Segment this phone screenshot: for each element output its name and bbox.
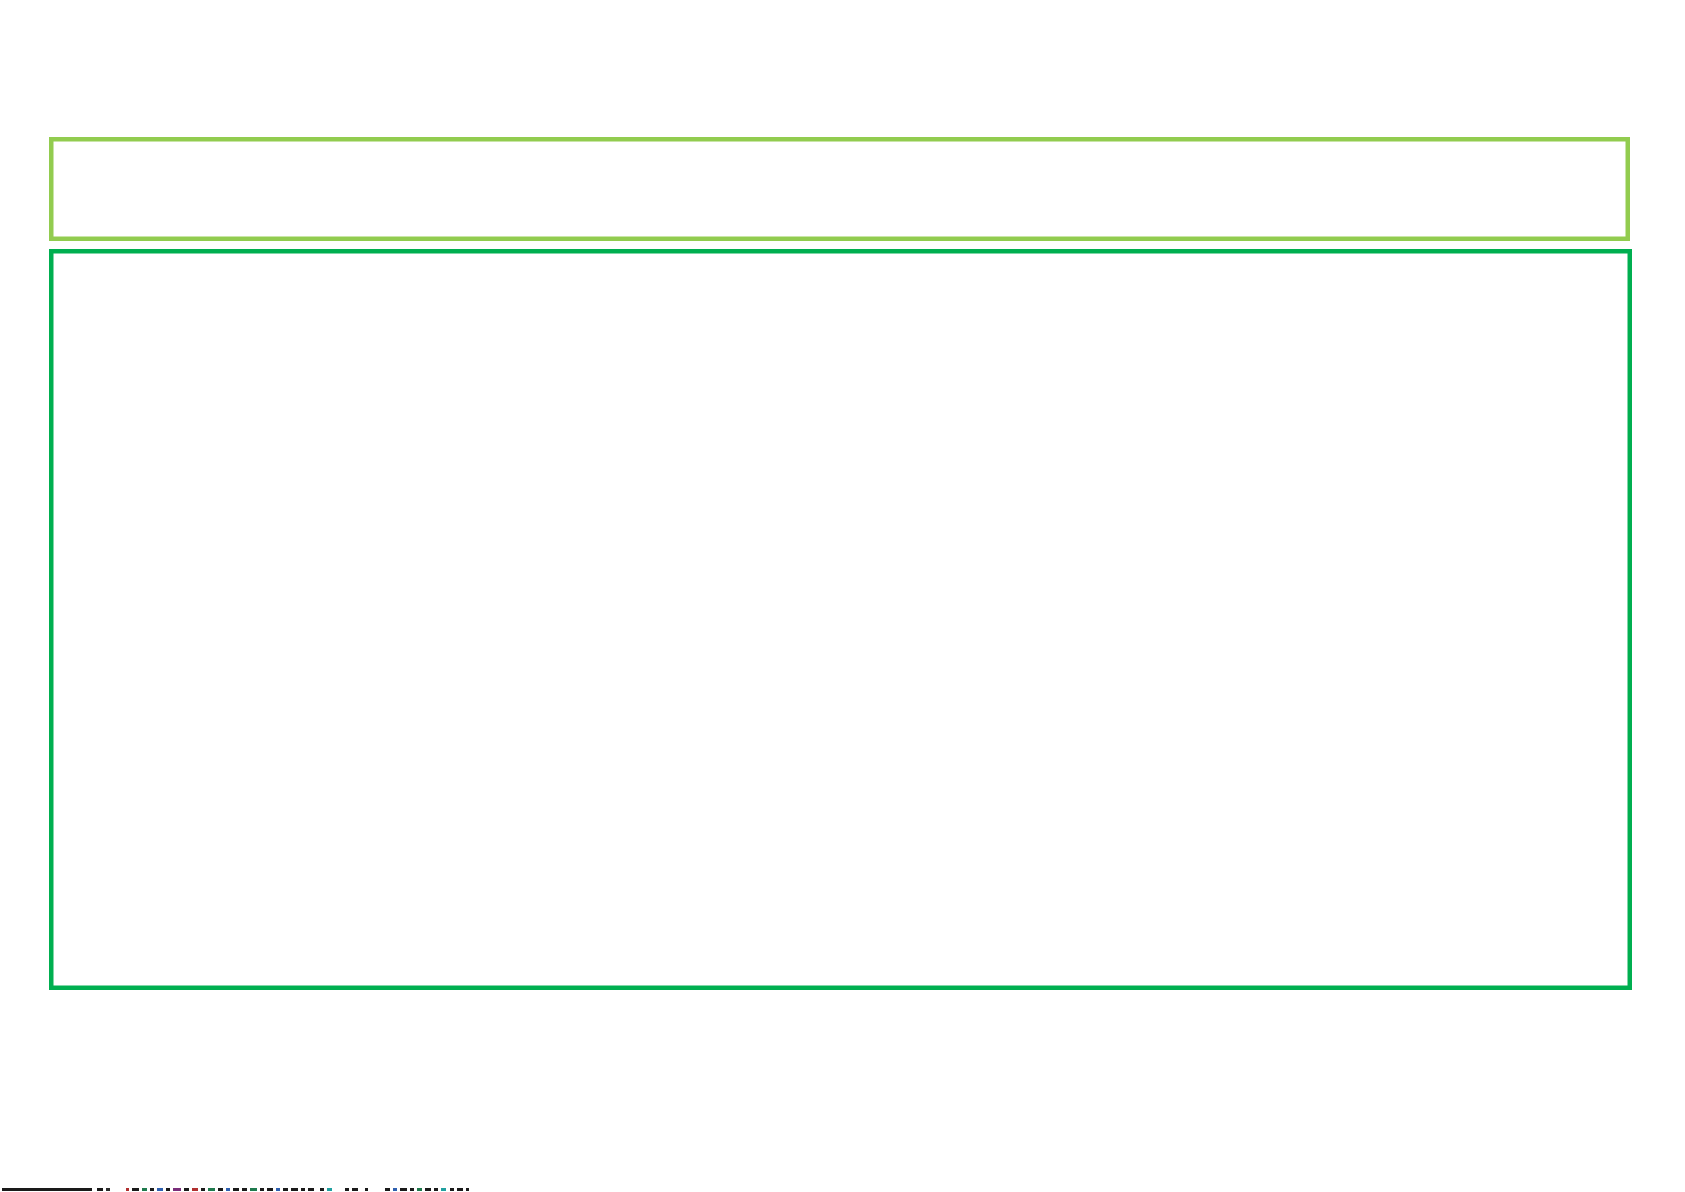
button[interactable]: Header field: [49, 137, 1630, 241]
button[interactable]: Body field: [49, 249, 1632, 990]
